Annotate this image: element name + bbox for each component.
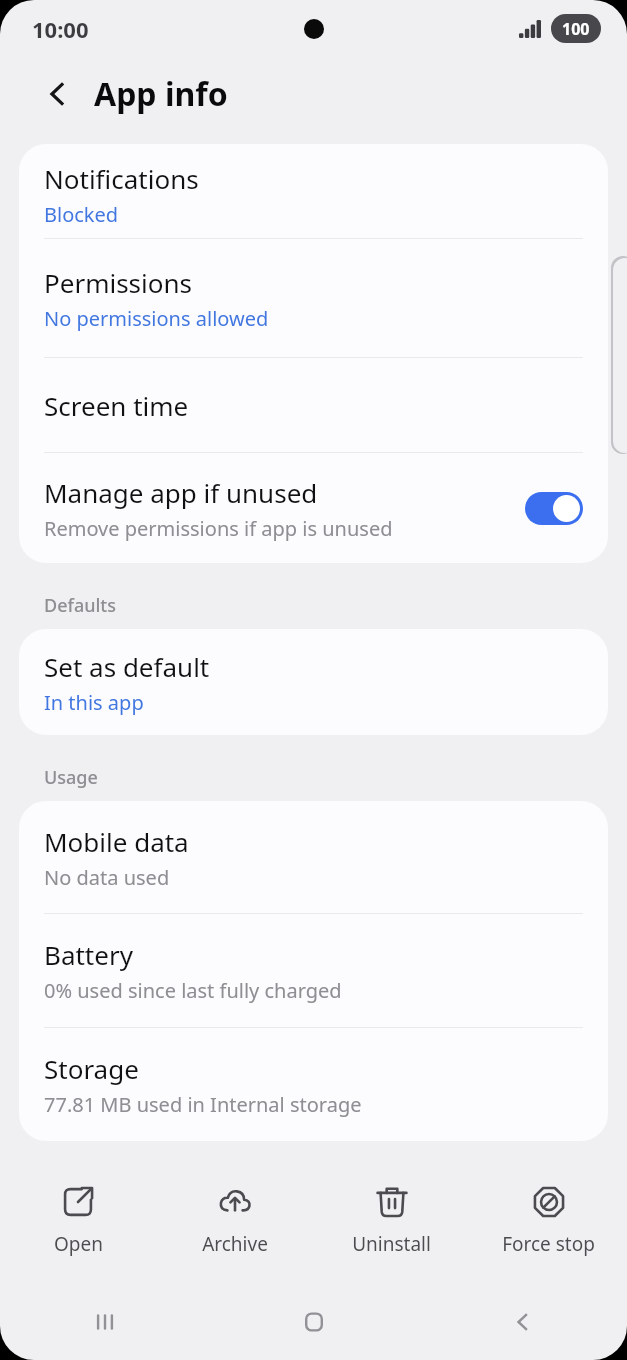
staticText: Battery <box>44 937 133 972</box>
button[interactable]: Archive <box>156 1168 313 1272</box>
button[interactable]: Back <box>34 70 82 118</box>
staticText: No permissions allowed <box>44 305 269 332</box>
staticText: Force stop <box>502 1231 595 1257</box>
button[interactable]: Permissions <box>19 239 608 357</box>
staticText: Remove permissions if app is unused <box>44 515 393 542</box>
staticText: Manage app if unused <box>44 475 318 510</box>
staticText: Blocked <box>44 201 119 228</box>
staticText: 77.81 MB used in Internal storage <box>44 1091 362 1118</box>
button[interactable]: Home <box>209 1284 418 1360</box>
staticText: Screen time <box>44 388 189 423</box>
staticText: 0% used since last fully charged <box>44 977 342 1004</box>
button[interactable]: Back <box>418 1284 627 1360</box>
button[interactable]: Storage <box>19 1028 608 1141</box>
staticText: Defaults <box>44 593 116 618</box>
button[interactable]: Screen time <box>19 358 608 452</box>
staticText: App info <box>94 72 228 116</box>
staticText: Notifications <box>44 161 199 196</box>
button[interactable]: Set as default <box>19 629 608 735</box>
staticText: Permissions <box>44 265 193 300</box>
staticText: Archive <box>202 1231 268 1257</box>
button[interactable]: Open <box>0 1168 156 1272</box>
staticText: Open <box>54 1231 103 1257</box>
button[interactable]: Force stop <box>470 1168 627 1272</box>
staticText: Set as default <box>44 649 210 684</box>
staticText: 10:00 <box>32 14 89 44</box>
staticText: Mobile data <box>44 824 189 859</box>
staticText: In this app <box>44 689 144 716</box>
staticText: Usage <box>44 765 98 790</box>
staticText: Storage <box>44 1051 139 1086</box>
button[interactable]: Recents <box>0 1284 209 1360</box>
button[interactable]: Manage app if unused <box>19 453 608 563</box>
staticText: Uninstall <box>352 1231 431 1257</box>
button[interactable]: Battery <box>19 914 608 1027</box>
button[interactable]: Uninstall <box>313 1168 470 1272</box>
button[interactable]: Mobile data <box>19 801 608 913</box>
staticText: 100 <box>562 18 590 40</box>
staticText: No data used <box>44 864 170 891</box>
button[interactable]: Notifications <box>19 144 608 238</box>
